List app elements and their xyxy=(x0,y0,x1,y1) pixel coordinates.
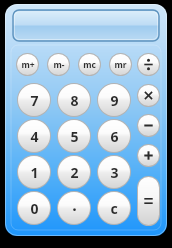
staticText: 0 xyxy=(30,199,39,218)
button[interactable]: m- xyxy=(47,53,70,76)
button[interactable]: . xyxy=(57,191,91,225)
staticText: mc xyxy=(83,59,96,71)
staticText: 7 xyxy=(30,91,39,110)
button[interactable]: 0 xyxy=(17,191,51,225)
button[interactable]: 9 xyxy=(97,83,131,117)
staticText: 4 xyxy=(30,127,39,146)
button[interactable]: 3 xyxy=(97,155,131,189)
button[interactable]: 4 xyxy=(17,119,51,153)
button[interactable]: Multiply xyxy=(137,84,160,107)
staticText: m- xyxy=(53,59,65,71)
button[interactable]: 1 xyxy=(17,155,51,189)
button[interactable]: 5 xyxy=(57,119,91,153)
button[interactable]: 8 xyxy=(57,83,91,117)
button[interactable]: Plus xyxy=(137,144,160,167)
staticText: 9 xyxy=(110,91,119,110)
staticText: 8 xyxy=(70,91,79,110)
button[interactable]: Divide xyxy=(137,53,160,76)
staticText: m+ xyxy=(21,59,35,71)
button[interactable]: mr xyxy=(109,53,132,76)
button[interactable]: m+ xyxy=(16,53,39,76)
button[interactable]: Minus xyxy=(137,114,160,137)
staticText: c xyxy=(110,199,118,218)
button[interactable]: 6 xyxy=(97,119,131,153)
staticText: 5 xyxy=(70,127,79,146)
button[interactable]: Display xyxy=(13,10,159,41)
button[interactable]: c xyxy=(97,191,131,225)
staticText: 2 xyxy=(70,163,79,182)
button[interactable]: Equals xyxy=(137,176,160,226)
staticText: 1 xyxy=(30,163,39,182)
button[interactable]: 7 xyxy=(17,83,51,117)
staticText: mr xyxy=(114,59,127,71)
staticText: 6 xyxy=(110,127,119,146)
button[interactable]: mc xyxy=(78,53,101,76)
staticText: 3 xyxy=(110,163,119,182)
staticText: . xyxy=(72,194,77,216)
button[interactable]: 2 xyxy=(57,155,91,189)
